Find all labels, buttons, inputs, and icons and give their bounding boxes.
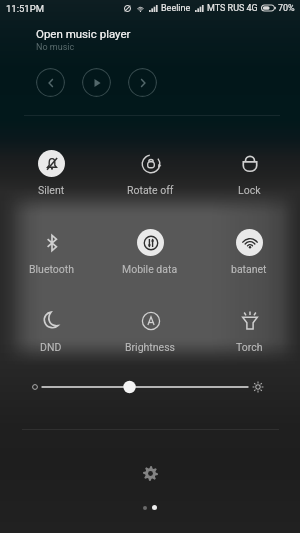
button[interactable]: Open music player — [36, 27, 131, 40]
staticText: No music — [36, 42, 75, 53]
button[interactable]: Brightness slider — [42, 377, 248, 397]
button[interactable]: Play — [82, 68, 111, 97]
staticText: DND — [40, 341, 62, 353]
staticText: 11:51PM — [6, 3, 44, 14]
button[interactable]: Silent — [11, 150, 91, 196]
button[interactable]: Next — [128, 68, 157, 97]
button[interactable]: DND — [11, 307, 91, 353]
staticText: Rotate off — [127, 184, 174, 196]
staticText: MTS RUS 4G — [207, 3, 258, 14]
staticText: batanet — [231, 263, 267, 275]
staticText: Mobile data — [122, 263, 178, 275]
staticText: Beeline — [161, 3, 191, 14]
button[interactable]: Previous — [36, 68, 65, 97]
staticText: Lock — [238, 184, 261, 196]
button[interactable]: batanet — [209, 229, 289, 275]
staticText: Torch — [236, 341, 263, 353]
staticText: Open music player — [36, 27, 131, 40]
button[interactable]: Lock — [209, 150, 289, 196]
button[interactable]: Rotate off — [110, 150, 190, 196]
staticText: Brightness — [125, 341, 175, 353]
button[interactable]: Settings — [135, 458, 165, 488]
button[interactable]: Brightness — [110, 307, 190, 353]
staticText: Bluetooth — [29, 263, 74, 275]
button[interactable]: Bluetooth — [11, 229, 91, 275]
button[interactable]: Mobile data — [110, 229, 190, 275]
staticText: Silent — [38, 184, 65, 196]
staticText: 70% — [278, 3, 295, 14]
button[interactable]: Torch — [209, 307, 289, 353]
